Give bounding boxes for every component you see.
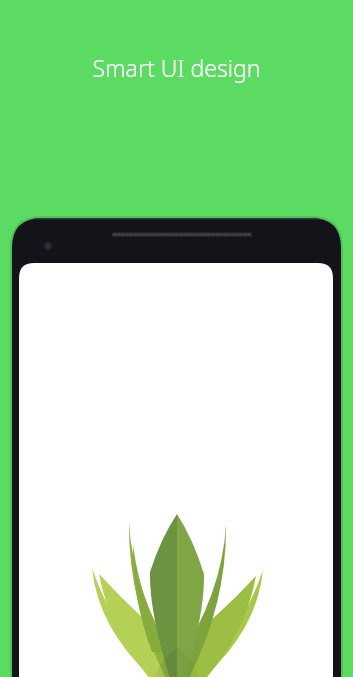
other: Phone mockup showing plant app logo <box>0 0 353 677</box>
button[interactable]: Smart UI design <box>0 52 353 83</box>
